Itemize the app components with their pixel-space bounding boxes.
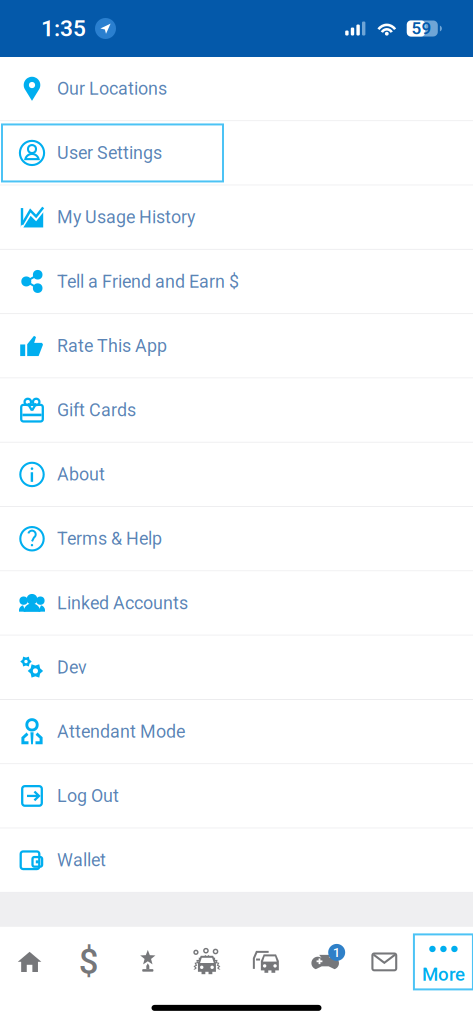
button[interactable]: Terms & Help [0, 507, 473, 570]
staticText: Wallet [57, 850, 106, 871]
staticText: 1:35 [41, 15, 86, 42]
staticText: Dev [57, 657, 87, 678]
button[interactable]: Linked Accounts [0, 571, 473, 635]
button[interactable]: More [414, 934, 473, 989]
staticText: Rate This App [57, 335, 167, 356]
button[interactable]: Tell a Friend and Earn $ [0, 250, 473, 313]
staticText: Tell a Friend and Earn $ [57, 271, 239, 292]
button[interactable]: Gift Cards [0, 378, 473, 442]
button[interactable]: Wallet [0, 829, 473, 892]
button[interactable]: Games [296, 937, 355, 987]
button[interactable]: User Settings [0, 121, 473, 185]
staticText: 1 [333, 945, 341, 960]
staticText: Attendant Mode [57, 721, 185, 742]
staticText: Linked Accounts [57, 593, 188, 613]
button[interactable]: Inbox [355, 937, 414, 987]
button[interactable]: Prices [59, 937, 118, 987]
button[interactable]: Attendant Mode [0, 700, 473, 763]
staticText: More [422, 963, 465, 985]
staticText: About [57, 464, 105, 485]
staticText: 59 [411, 18, 431, 38]
button[interactable]: Our Locations [0, 57, 473, 120]
button[interactable]: About [0, 443, 473, 506]
button[interactable]: Home [0, 937, 59, 987]
staticText: Our Locations [57, 78, 167, 99]
staticText: User Settings [57, 142, 162, 163]
staticText: Log Out [57, 785, 119, 806]
staticText: $ [79, 942, 99, 982]
button[interactable]: Vehicles [237, 937, 296, 987]
staticText: Gift Cards [57, 400, 136, 421]
button[interactable]: My Usage History [0, 186, 473, 249]
button[interactable]: Rewards [118, 937, 177, 987]
staticText: My Usage History [57, 207, 195, 228]
button[interactable]: Rate This App [0, 314, 473, 377]
button[interactable]: Dev [0, 636, 473, 699]
staticText: Terms & Help [57, 528, 162, 549]
button[interactable]: Log Out [0, 764, 473, 828]
button[interactable]: Car Wash [177, 937, 236, 987]
